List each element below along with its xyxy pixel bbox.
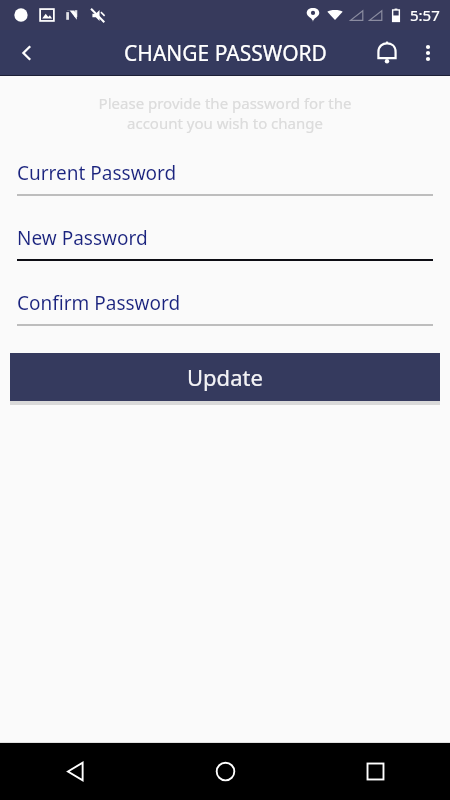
button[interactable]: Confirm Password [17,290,433,326]
button[interactable]: Update [10,353,440,401]
staticText: Confirm Password [17,290,181,316]
staticText: 5:57 [410,5,440,25]
button[interactable]: New Password [17,225,433,261]
button[interactable]: Current Password [17,160,433,196]
button[interactable]: More options [410,30,446,76]
button[interactable]: Home [150,743,300,800]
button[interactable]: Notifications [364,30,410,76]
staticText: Current Password [17,160,177,186]
staticText: Please provide the password for the acco… [24,93,426,133]
button[interactable]: Recent apps [300,743,450,800]
staticText: Update [187,362,263,392]
button[interactable]: Back [0,743,150,800]
staticText: CHANGE PASSWORD [124,39,327,68]
staticText: New Password [17,225,148,251]
button[interactable]: Back [0,30,54,76]
